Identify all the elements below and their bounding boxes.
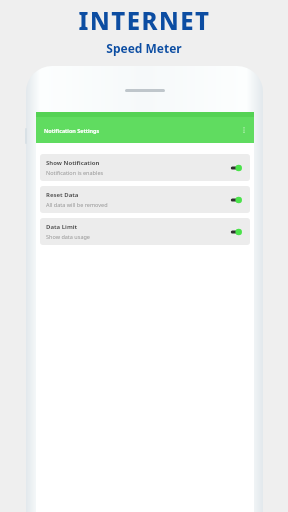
button[interactable]: Toggle — [230, 195, 244, 205]
button[interactable]: Toggle — [230, 163, 244, 173]
staticText: INTERNET — [78, 4, 211, 37]
button[interactable]: Show Notification — [40, 154, 250, 181]
staticText: All data will be removed — [46, 201, 108, 208]
button[interactable]: More options — [238, 124, 250, 136]
staticText: Notification is enables — [46, 169, 104, 176]
button[interactable]: Reset Data — [40, 186, 250, 213]
button[interactable]: Toggle — [230, 227, 244, 237]
staticText: Speed Meter — [106, 40, 182, 56]
staticText: Show Notification — [46, 159, 100, 167]
button[interactable]: Notification Settings — [36, 117, 254, 143]
staticText: Notification Settings — [44, 127, 100, 134]
staticText: Data Limit — [46, 223, 78, 231]
staticText: Reset Data — [46, 191, 79, 199]
button[interactable]: Data Limit — [40, 218, 250, 245]
staticText: Show data usage — [46, 233, 90, 240]
